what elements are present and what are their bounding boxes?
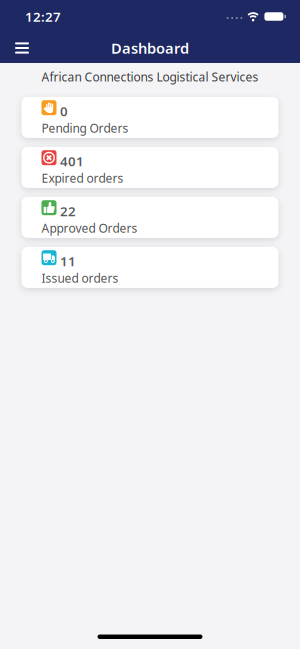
- button[interactable]: 401: [21, 147, 278, 188]
- staticText: 11: [60, 252, 76, 270]
- staticText: Dashboard: [111, 38, 189, 58]
- button[interactable]: 0: [21, 97, 278, 138]
- button[interactable]: Menu: [0, 36, 29, 60]
- staticText: Pending Orders: [41, 120, 128, 136]
- staticText: 22: [60, 202, 76, 220]
- staticText: Expired orders: [41, 170, 123, 186]
- staticText: Issued orders: [41, 270, 118, 286]
- staticText: 0: [60, 102, 68, 120]
- staticText: African Connections Logistical Services: [41, 69, 258, 85]
- button[interactable]: 22: [21, 197, 278, 238]
- button[interactable]: 11: [21, 247, 278, 288]
- staticText: 401: [60, 152, 84, 170]
- staticText: Approved Orders: [41, 220, 137, 236]
- staticText: 12:27: [25, 8, 61, 25]
